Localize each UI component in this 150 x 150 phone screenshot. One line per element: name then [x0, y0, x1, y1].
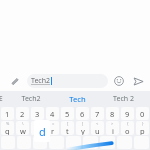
staticText: 7	[95, 109, 100, 119]
staticText: r	[51, 126, 55, 135]
button[interactable]: Tech	[54, 94, 100, 104]
button[interactable]	[100, 136, 115, 149]
button[interactable]: {	[121, 121, 134, 135]
staticText: u	[95, 126, 100, 135]
staticText: =	[52, 121, 55, 126]
staticText: Tech	[69, 94, 86, 104]
button[interactable]: 4	[46, 107, 59, 120]
staticText: d	[39, 124, 46, 139]
staticText: 9	[125, 109, 130, 119]
staticText: Tech2	[31, 76, 51, 86]
button[interactable]: 7	[91, 107, 104, 120]
staticText: 0	[140, 109, 145, 119]
button[interactable]: [	[61, 121, 74, 135]
staticText: 8	[110, 109, 115, 119]
button[interactable]: >	[106, 121, 119, 135]
staticText: 2	[20, 109, 25, 119]
staticText: i	[112, 126, 114, 135]
button[interactable]: \	[16, 121, 29, 135]
button[interactable]: %	[1, 121, 14, 135]
button[interactable]: 5	[61, 107, 74, 120]
staticText: %	[6, 121, 10, 126]
staticText: 4	[50, 109, 55, 119]
staticText: }	[142, 121, 144, 126]
button[interactable]: <	[91, 121, 104, 135]
button[interactable]: Tech2	[27, 74, 108, 88]
staticText: <	[96, 121, 99, 126]
staticText: Tech 2	[113, 94, 134, 104]
staticText: Tech2	[21, 94, 41, 104]
button[interactable]: 8	[106, 107, 119, 120]
button[interactable]: Send	[129, 72, 147, 90]
button[interactable]: Emoji	[111, 73, 127, 89]
staticText: [	[67, 121, 69, 126]
button[interactable]: =	[46, 121, 59, 135]
staticText: q	[5, 126, 10, 135]
staticText: y	[81, 126, 85, 135]
staticText: 3	[35, 109, 40, 119]
button[interactable]: 2	[16, 107, 29, 120]
button[interactable]: 0	[136, 107, 149, 120]
staticText: w	[20, 126, 26, 135]
button[interactable]: 9	[121, 107, 134, 120]
staticText: t	[66, 126, 69, 135]
staticText: e	[35, 126, 40, 135]
button[interactable]: ]	[76, 121, 89, 135]
staticText: 1	[5, 109, 10, 119]
staticText: \	[22, 121, 24, 126]
button[interactable]: Tech 2	[100, 94, 146, 104]
button[interactable]: |	[31, 121, 44, 135]
button[interactable]: 1	[1, 107, 14, 120]
button[interactable]: 6	[76, 107, 89, 120]
button[interactable]	[66, 136, 81, 149]
button[interactable]: Attach	[5, 72, 23, 90]
staticText: {	[127, 121, 129, 126]
button[interactable]: 3	[31, 107, 44, 120]
staticText: 6	[80, 109, 85, 119]
button[interactable]	[83, 136, 98, 149]
staticText: ]	[82, 121, 84, 126]
button[interactable]: d	[34, 120, 50, 142]
staticText: o	[125, 126, 130, 135]
button[interactable]: }	[136, 121, 149, 135]
staticText: 5	[65, 109, 70, 119]
button[interactable]: Tech2	[8, 94, 54, 104]
staticText: E	[0, 94, 3, 103]
staticText: >	[111, 121, 114, 126]
staticText: p	[140, 126, 145, 135]
